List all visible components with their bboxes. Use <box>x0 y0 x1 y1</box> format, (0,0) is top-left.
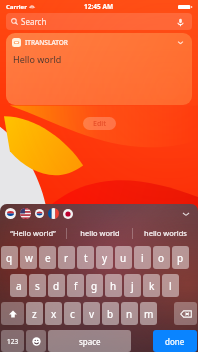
button[interactable]: Emoji <box>26 330 46 352</box>
button[interactable]: space <box>48 330 131 352</box>
button[interactable]: done <box>153 330 197 352</box>
staticText: w <box>25 251 33 265</box>
button[interactable]: w <box>20 246 37 269</box>
button[interactable]: z <box>26 302 43 325</box>
staticText: t <box>84 251 88 265</box>
button[interactable]: v <box>83 302 100 325</box>
button[interactable]: hello world <box>67 223 132 243</box>
staticText: o <box>158 251 165 265</box>
button[interactable]: Voice search <box>173 15 187 29</box>
staticText: c <box>70 307 75 321</box>
staticText: done <box>165 336 185 347</box>
staticText: b <box>107 307 114 321</box>
button[interactable]: n <box>121 302 138 325</box>
button[interactable]: l <box>162 274 179 297</box>
staticText: Search <box>21 16 47 27</box>
staticText: g <box>91 279 98 293</box>
staticText: d <box>53 279 60 293</box>
button[interactable]: Language <box>48 208 59 219</box>
button[interactable]: c <box>64 302 81 325</box>
button[interactable]: hello worlds <box>133 223 198 243</box>
staticText: p <box>177 251 184 265</box>
button[interactable]: e <box>39 246 56 269</box>
staticText: 12:45 AM <box>84 2 114 11</box>
button[interactable]: o <box>153 246 170 269</box>
staticText: q <box>6 251 13 265</box>
button[interactable]: k <box>143 274 160 297</box>
button[interactable]: d <box>48 274 65 297</box>
button[interactable]: g <box>86 274 103 297</box>
button[interactable]: f <box>67 274 84 297</box>
button[interactable]: Shift <box>1 302 24 325</box>
staticText: hello world <box>80 228 120 238</box>
button[interactable]: ITRANSLATOR <box>6 33 192 105</box>
button[interactable]: m <box>140 302 157 325</box>
button[interactable]: Search <box>6 13 192 30</box>
staticText: j <box>131 279 134 293</box>
staticText: e <box>45 251 51 265</box>
staticText: Hello world <box>13 53 62 65</box>
button[interactable]: Hide keyboard <box>179 207 193 221</box>
button[interactable]: “Hello world” <box>0 223 66 243</box>
button[interactable]: Collapse widget <box>174 36 186 48</box>
staticText: s <box>35 279 40 293</box>
button[interactable]: a <box>10 274 27 297</box>
button[interactable]: s <box>29 274 46 297</box>
button[interactable]: Backspace <box>174 302 197 325</box>
staticText: “Hello world” <box>10 228 56 238</box>
button[interactable]: h <box>105 274 122 297</box>
button[interactable]: q <box>1 246 18 269</box>
button[interactable]: j <box>124 274 141 297</box>
staticText: n <box>126 307 133 321</box>
staticText: l <box>169 279 172 293</box>
staticText: m <box>144 307 154 321</box>
staticText: a <box>16 279 22 293</box>
staticText: h <box>110 279 117 293</box>
button[interactable]: Language <box>35 209 44 218</box>
button[interactable]: r <box>58 246 75 269</box>
staticText: z <box>32 307 37 321</box>
button[interactable]: y <box>96 246 113 269</box>
staticText: space <box>79 336 101 347</box>
staticText: u <box>120 251 127 265</box>
staticText: x <box>51 307 57 321</box>
button[interactable]: x <box>45 302 62 325</box>
staticText: r <box>64 251 69 265</box>
button[interactable]: i <box>134 246 151 269</box>
staticText: i <box>141 251 144 265</box>
button[interactable]: Language <box>20 208 31 219</box>
button[interactable]: Edit <box>83 117 116 130</box>
button[interactable]: Language <box>5 208 16 219</box>
button[interactable]: p <box>172 246 189 269</box>
staticText: k <box>149 279 155 293</box>
button[interactable]: Language <box>63 209 73 219</box>
button[interactable]: t <box>77 246 94 269</box>
staticText: hello worlds <box>144 228 187 238</box>
staticText: Carrier <box>6 3 27 11</box>
staticText: y <box>102 251 108 265</box>
button[interactable]: b <box>102 302 119 325</box>
staticText: Edit <box>93 119 107 129</box>
staticText: ITRANSLATOR <box>25 38 68 47</box>
button[interactable]: 123 <box>1 330 24 352</box>
staticText: f <box>74 279 78 293</box>
staticText: 123 <box>7 337 19 346</box>
staticText: v <box>89 307 95 321</box>
button[interactable]: u <box>115 246 132 269</box>
